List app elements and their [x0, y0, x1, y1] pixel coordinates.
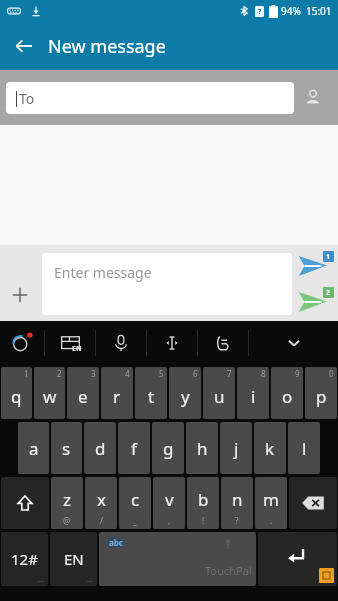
staticText: j	[234, 437, 239, 460]
staticText: !	[202, 515, 205, 526]
staticText: ,	[168, 515, 171, 526]
staticText: 7	[227, 368, 232, 379]
staticText: v	[165, 488, 174, 511]
button[interactable]: 9	[271, 367, 303, 419]
button[interactable]: 4	[101, 367, 133, 419]
button[interactable]: Shift	[1, 477, 49, 529]
staticText: 5	[159, 368, 164, 379]
staticText: EN	[72, 344, 82, 354]
button[interactable]: Send SIM 1	[294, 251, 334, 281]
staticText: New message	[48, 34, 166, 59]
staticText: 1	[24, 368, 29, 379]
staticText: 12#	[11, 549, 38, 569]
staticText: w	[43, 385, 57, 408]
button[interactable]: TouchPal menu	[0, 321, 44, 365]
staticText: Enter message	[54, 263, 152, 282]
button[interactable]: 3	[67, 367, 99, 419]
staticText: /	[100, 515, 103, 526]
staticText: h	[197, 437, 208, 460]
button[interactable]: l	[288, 422, 320, 474]
staticText: 6	[193, 368, 198, 379]
staticText: m	[263, 488, 279, 511]
button[interactable]: z	[51, 477, 83, 529]
button[interactable]: g	[152, 422, 184, 474]
button[interactable]: 2	[34, 367, 65, 419]
button[interactable]: Enter message	[42, 253, 292, 315]
staticText: q	[11, 385, 22, 408]
button[interactable]: d	[84, 422, 116, 474]
button[interactable]: EN	[50, 532, 97, 586]
button[interactable]: h	[186, 422, 218, 474]
staticText: g	[163, 437, 174, 460]
button[interactable]: Hide keyboard	[249, 321, 338, 365]
button[interactable]: 0	[305, 367, 337, 419]
button[interactable]: 6	[169, 367, 201, 419]
staticText: d	[95, 437, 106, 460]
staticText: k	[265, 437, 275, 460]
staticText: n	[232, 488, 243, 511]
staticText: l	[302, 437, 307, 460]
button[interactable]: v	[153, 477, 185, 529]
button[interactable]: Send SIM 2	[294, 287, 334, 317]
button[interactable]: 12#	[1, 532, 48, 586]
staticText: _	[133, 515, 137, 526]
staticText: TouchPal	[205, 563, 252, 578]
staticText: ?	[235, 515, 239, 526]
button[interactable]: Enter	[258, 532, 337, 586]
staticText: z	[63, 488, 71, 511]
staticText: t	[148, 385, 155, 408]
button[interactable]: m	[255, 477, 287, 529]
staticText: a	[29, 437, 39, 460]
button[interactable]: Attach	[0, 275, 40, 315]
staticText: .	[270, 515, 273, 526]
staticText: abc	[109, 537, 123, 548]
button[interactable]: k	[254, 422, 286, 474]
button[interactable]: 8	[237, 367, 269, 419]
staticText: e	[78, 385, 88, 408]
button[interactable]: x	[85, 477, 117, 529]
button[interactable]: c	[119, 477, 151, 529]
button[interactable]: Language	[45, 321, 95, 365]
staticText: 2	[326, 288, 331, 298]
staticText: x	[97, 488, 106, 511]
button[interactable]: To	[6, 82, 294, 114]
staticText: ?	[258, 7, 262, 17]
staticText: c	[131, 488, 140, 511]
button[interactable]: a	[18, 422, 49, 474]
button[interactable]: j	[220, 422, 252, 474]
staticText: u	[214, 385, 225, 408]
button[interactable]: 1	[1, 367, 32, 419]
staticText: 8	[261, 368, 266, 379]
staticText: ...	[87, 575, 93, 585]
staticText: 15:01	[306, 4, 332, 18]
staticText: s	[62, 437, 71, 460]
button[interactable]: f	[118, 422, 150, 474]
staticText: y	[181, 385, 190, 408]
staticText: f	[131, 437, 137, 460]
staticText: 1	[326, 252, 331, 262]
staticText: To	[19, 89, 35, 108]
button[interactable]: Space	[99, 532, 256, 586]
button[interactable]: s	[51, 422, 82, 474]
staticText: 3	[91, 368, 96, 379]
button[interactable]: 5	[135, 367, 167, 419]
button[interactable]: Move cursor	[147, 321, 197, 365]
staticText: i	[251, 385, 256, 408]
button[interactable]: b	[187, 477, 219, 529]
staticText: 9	[295, 368, 300, 379]
staticText: 2	[57, 368, 62, 379]
button[interactable]: Back	[0, 22, 48, 70]
staticText: p	[316, 385, 327, 408]
button[interactable]: Backspace	[289, 477, 337, 529]
button[interactable]: Handwriting	[198, 321, 248, 365]
staticText: 4	[125, 368, 130, 379]
button[interactable]: Choose contact	[294, 79, 332, 117]
button[interactable]: n	[221, 477, 253, 529]
button[interactable]: 7	[203, 367, 235, 419]
staticText: EN	[64, 549, 84, 569]
staticText: ...	[38, 575, 44, 585]
staticText: @	[63, 515, 71, 526]
staticText: 94%	[281, 4, 301, 18]
button[interactable]: Voice input	[96, 321, 146, 365]
staticText: o	[282, 385, 293, 408]
